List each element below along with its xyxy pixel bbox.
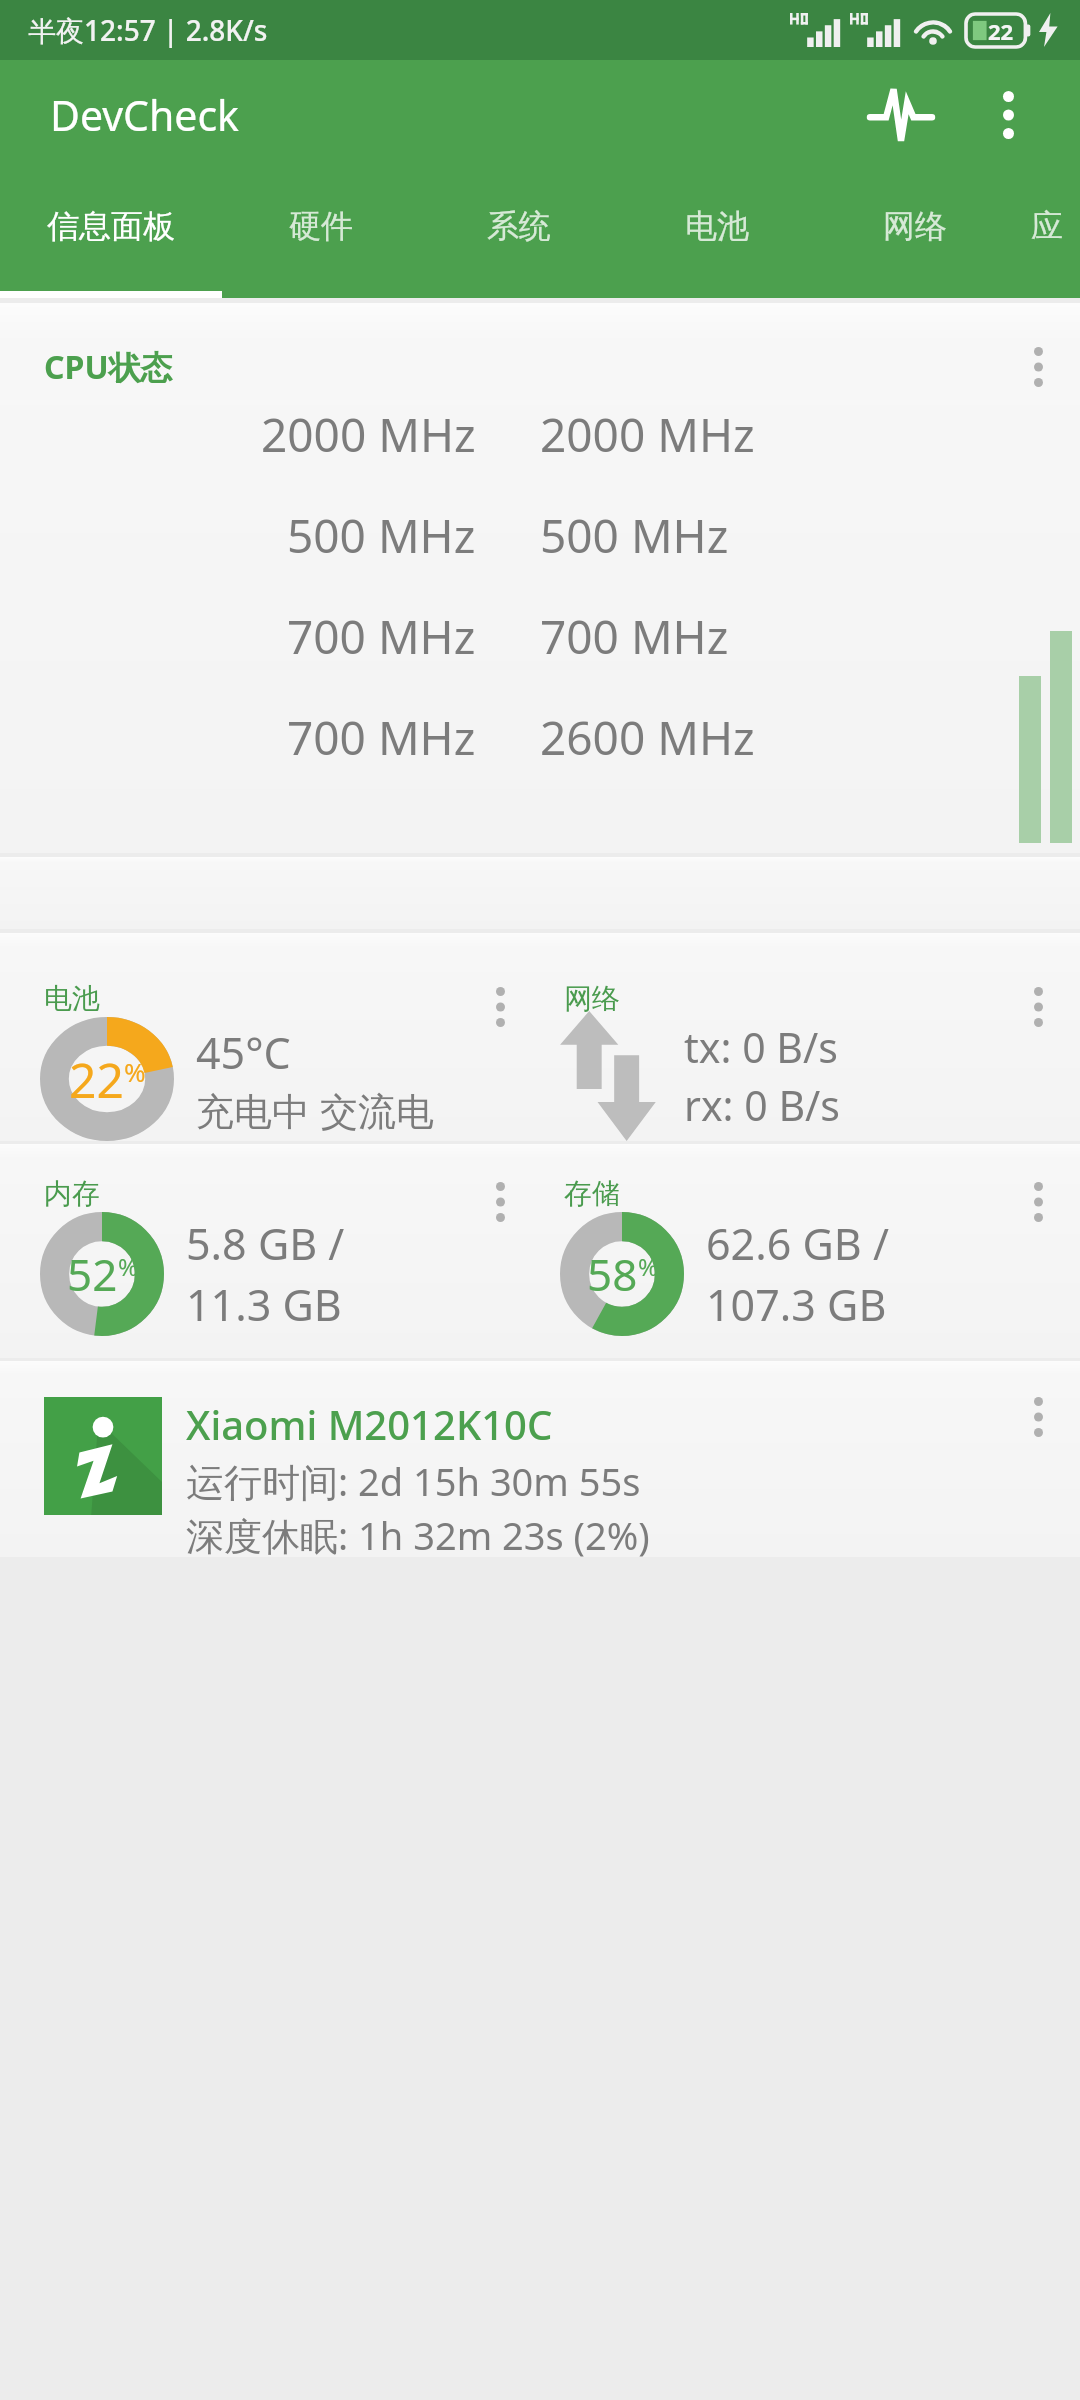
- staticText: 22: [988, 16, 1014, 46]
- staticText: 11.3 GB: [186, 1275, 342, 1334]
- staticText: rx: 0 B/s: [684, 1077, 840, 1133]
- staticText: 存储: [564, 1176, 620, 1211]
- button[interactable]: Xiaomi M2012K10C: [0, 1361, 1080, 1557]
- staticText: 500 MHz: [287, 504, 476, 567]
- staticText: 52: [67, 1244, 118, 1304]
- button[interactable]: CPU状态: [0, 303, 1080, 853]
- staticText: 700 MHz: [540, 605, 729, 668]
- staticText: 系统: [487, 206, 551, 246]
- button[interactable]: Card options: [998, 959, 1078, 1055]
- button[interactable]: 电池: [0, 933, 540, 1141]
- staticText: 网络: [564, 981, 620, 1016]
- staticText: 5.8 GB /: [186, 1214, 345, 1273]
- staticText: 信息面板: [47, 206, 175, 246]
- button[interactable]: 网络: [540, 933, 1080, 1141]
- staticText: 500 MHz: [540, 504, 729, 567]
- staticText: 内存: [44, 1176, 100, 1211]
- button[interactable]: Card options: [998, 319, 1078, 415]
- staticText: 运行时间: 2d 15h 30m 55s: [186, 1455, 641, 1507]
- staticText: 700 MHz: [287, 605, 476, 668]
- staticText: 半夜12:57 | 2.8K/s: [28, 11, 268, 49]
- button[interactable]: Card options: [460, 1154, 540, 1250]
- staticText: 硬件: [289, 206, 353, 246]
- button[interactable]: 网络: [816, 170, 1014, 298]
- staticText: 45°C: [196, 1023, 291, 1082]
- button[interactable]: More options: [956, 63, 1060, 167]
- staticText: tx: 0 B/s: [684, 1019, 838, 1075]
- staticText: 2000 MHz: [261, 403, 476, 466]
- staticText: 网络: [883, 206, 947, 246]
- staticText: %: [124, 1054, 146, 1089]
- button[interactable]: 内存: [0, 1144, 540, 1358]
- staticText: 2000 MHz: [540, 403, 755, 466]
- button[interactable]: Card options: [460, 959, 540, 1055]
- button[interactable]: 应: [1014, 170, 1080, 298]
- staticText: 2600 MHz: [540, 706, 755, 769]
- staticText: 62.6 GB /: [706, 1214, 889, 1273]
- button[interactable]: 电池: [618, 170, 816, 298]
- staticText: 电池: [685, 206, 749, 246]
- button[interactable]: 系统: [420, 170, 618, 298]
- staticText: 应: [1031, 206, 1063, 246]
- staticText: 107.3 GB: [706, 1275, 887, 1334]
- staticText: 电池: [44, 981, 100, 1016]
- staticText: 深度休眠: 1h 32m 23s (2%): [186, 1509, 650, 1557]
- staticText: 22: [69, 1047, 124, 1112]
- button[interactable]: 信息面板: [0, 170, 222, 298]
- button[interactable]: 存储: [540, 1144, 1080, 1358]
- staticText: 58: [587, 1244, 638, 1304]
- button[interactable]: Monitor: [846, 60, 956, 170]
- button[interactable]: Card options: [998, 1369, 1078, 1465]
- staticText: 充电中 交流电: [196, 1084, 434, 1136]
- staticText: CPU状态: [44, 345, 173, 389]
- staticText: %: [638, 1250, 658, 1283]
- staticText: %: [118, 1250, 138, 1283]
- staticText: Xiaomi M2012K10C: [186, 1397, 553, 1451]
- button[interactable]: 硬件: [222, 170, 420, 298]
- staticText: 700 MHz: [287, 706, 476, 769]
- button[interactable]: Card options: [998, 1154, 1078, 1250]
- staticText: DevCheck: [50, 87, 240, 143]
